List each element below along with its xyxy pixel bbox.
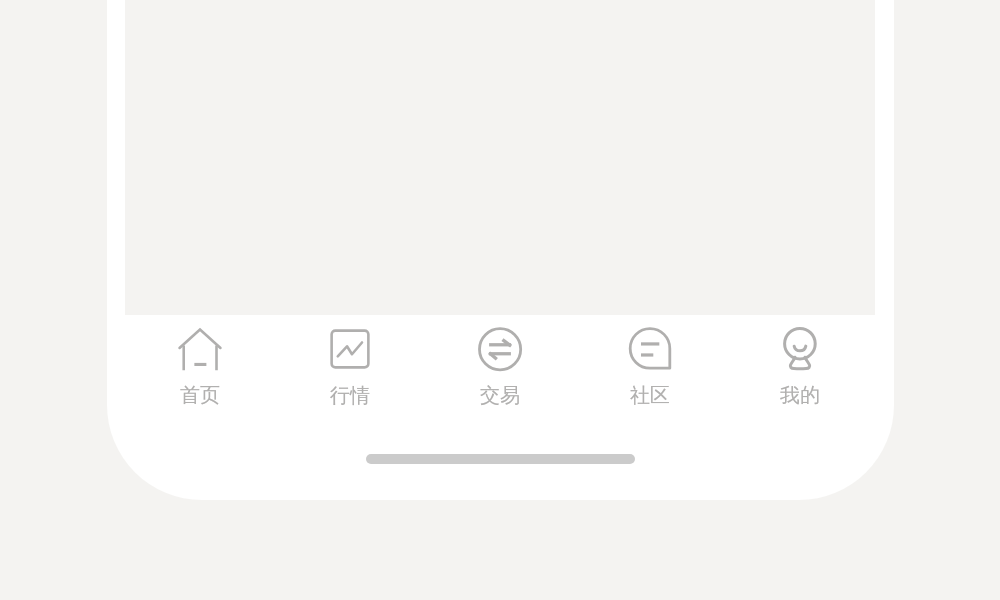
button[interactable]: 交易 — [425, 315, 575, 435]
other: 首页 — [178, 327, 222, 371]
other: 我的 — [778, 327, 822, 371]
staticText: 社区 — [630, 383, 670, 408]
staticText: 交易 — [480, 383, 520, 408]
staticText: 我的 — [780, 383, 820, 408]
staticText: 行情 — [330, 383, 370, 408]
button[interactable]: 我的 — [725, 315, 875, 435]
other: 行情 — [328, 327, 372, 371]
button[interactable]: 社区 — [575, 315, 725, 435]
staticText: 首页 — [180, 383, 220, 408]
button[interactable]: 行情 — [275, 315, 425, 435]
other: 交易 — [478, 327, 522, 371]
other: 社区 — [628, 327, 672, 371]
button[interactable]: 首页 — [125, 315, 275, 435]
